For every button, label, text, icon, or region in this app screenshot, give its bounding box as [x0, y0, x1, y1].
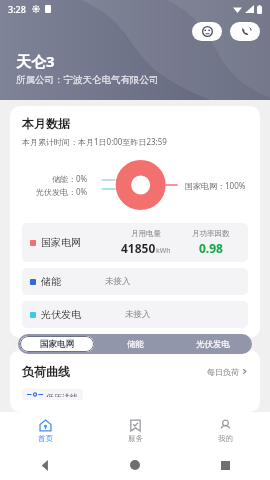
- staticText: 月用电量: [131, 229, 161, 238]
- staticText: 3:28: [8, 3, 26, 15]
- staticText: 储能: [127, 339, 144, 350]
- button[interactable]: 光伏发电: [22, 301, 248, 328]
- staticText: 未接入: [105, 276, 131, 287]
- staticText: 服务: [128, 434, 143, 443]
- staticText: 低压进线: [46, 392, 78, 397]
- staticText: 我的: [218, 434, 233, 443]
- button[interactable]: 负荷曲线: [22, 364, 248, 379]
- button[interactable]: 储能: [98, 336, 172, 352]
- staticText: 储能: [41, 275, 61, 288]
- staticText: 每日负荷: [207, 367, 239, 377]
- button[interactable]: 低压进线: [22, 389, 83, 400]
- staticText: 未接入: [125, 309, 151, 320]
- button[interactable]: 储能: [22, 268, 248, 295]
- staticText: 首页: [38, 434, 53, 443]
- staticText: 国家电网: [40, 339, 74, 350]
- staticText: 国家电网: [41, 236, 81, 249]
- button[interactable]: Recents: [180, 450, 270, 480]
- staticText: 储能：0%: [52, 173, 88, 184]
- staticText: 国家电网：100%: [185, 180, 246, 191]
- staticText: 光伏发电: [41, 308, 81, 321]
- staticText: 负荷曲线: [22, 364, 70, 379]
- staticText: 本月数据: [22, 116, 70, 131]
- staticText: 所属公司：宁波天仑电气有限公司: [16, 74, 159, 86]
- staticText: kWh: [156, 246, 171, 256]
- button[interactable]: 首页: [0, 412, 90, 450]
- staticText: 天仑3: [16, 51, 55, 71]
- staticText: 月功率因数: [192, 229, 230, 238]
- button[interactable]: Messages: [192, 22, 222, 41]
- button[interactable]: 服务: [90, 412, 180, 450]
- staticText: 0.98: [199, 240, 223, 256]
- staticText: 本月累计时间：本月1日0:00至昨日23:59: [22, 136, 167, 147]
- button[interactable]: 我的: [180, 412, 270, 450]
- button[interactable]: Home: [90, 450, 180, 480]
- button[interactable]: 国家电网: [20, 336, 94, 352]
- button[interactable]: Call: [230, 22, 260, 41]
- staticText: 41850: [121, 240, 156, 256]
- button[interactable]: 光伏发电: [176, 336, 250, 352]
- button[interactable]: 国家电网: [22, 223, 248, 262]
- button[interactable]: Back: [0, 450, 90, 480]
- staticText: 光伏发电: [196, 339, 230, 350]
- staticText: 光伏发电：0%: [36, 186, 88, 197]
